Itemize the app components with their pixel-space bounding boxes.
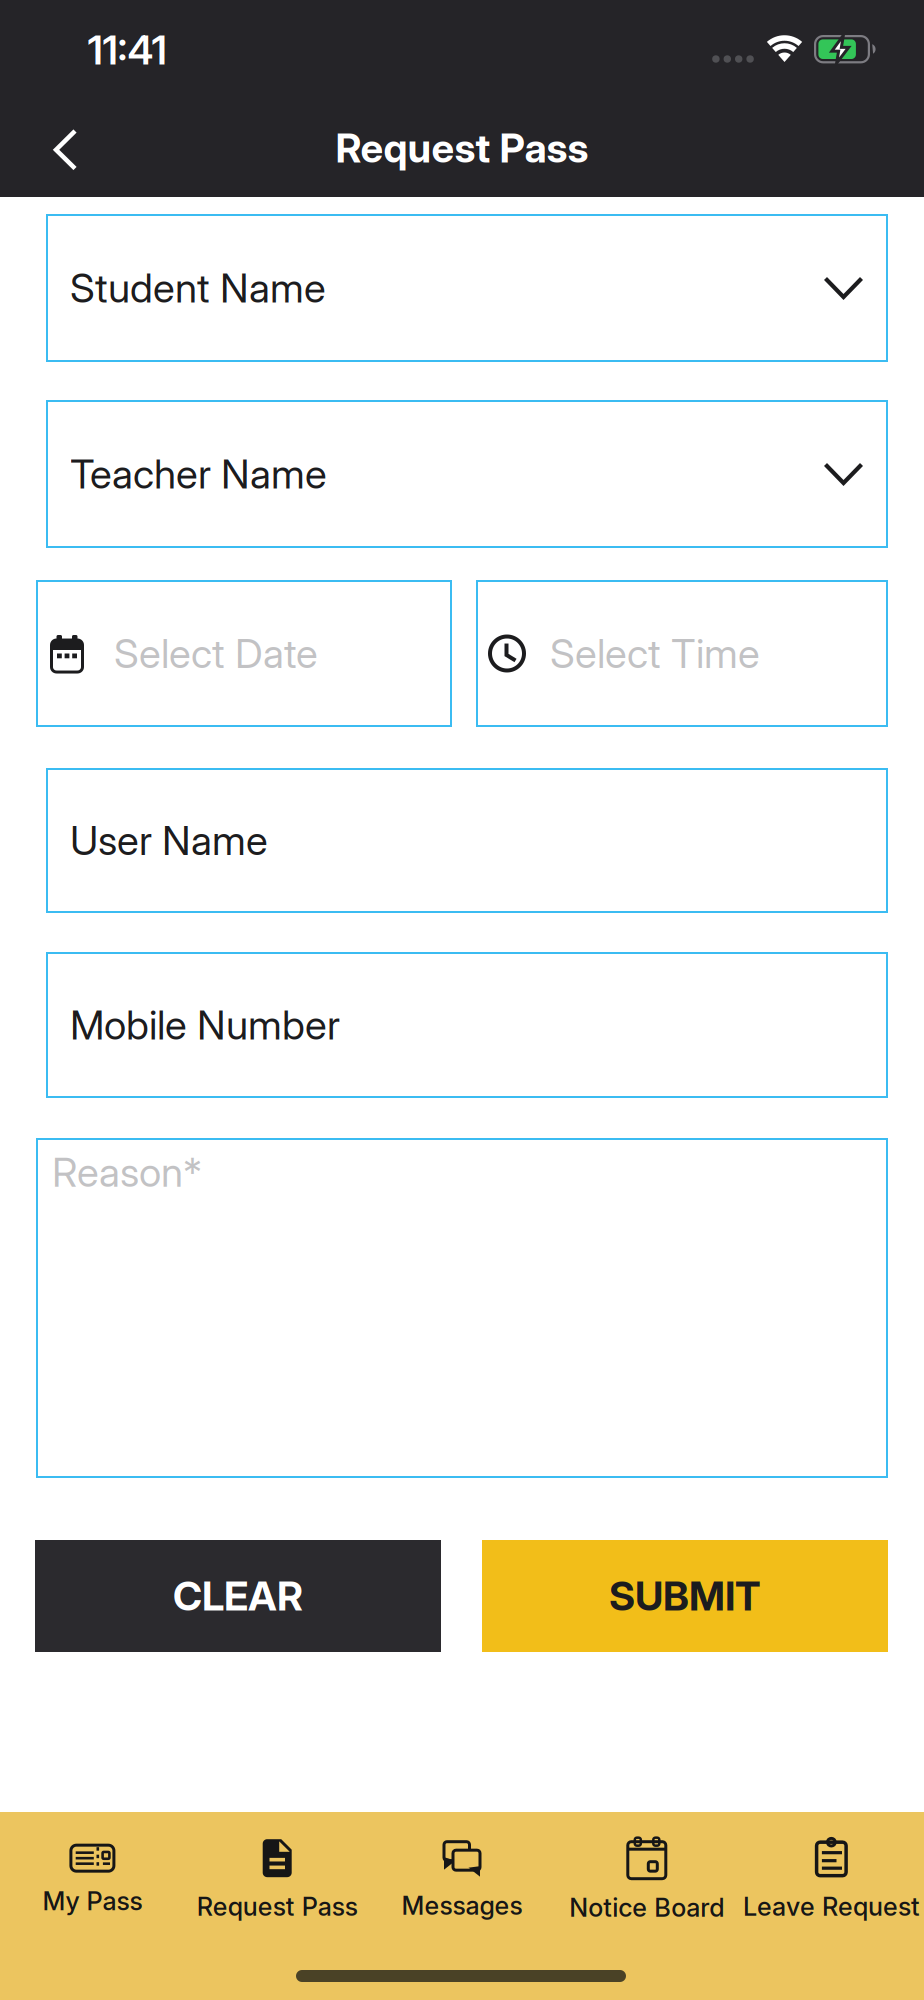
button[interactable]: Notice Board bbox=[542, 1836, 752, 1924]
staticText: Select Date bbox=[114, 629, 318, 678]
staticText: Teacher Name bbox=[70, 450, 327, 498]
staticText: Messages bbox=[401, 1890, 522, 1921]
button[interactable]: My Pass bbox=[0, 1836, 197, 1924]
button[interactable]: CLEAR bbox=[35, 1540, 441, 1652]
staticText: Mobile Number bbox=[70, 1001, 340, 1049]
staticText: My Pass bbox=[42, 1886, 142, 1916]
button[interactable]: Messages bbox=[357, 1836, 567, 1924]
staticText: Request Pass bbox=[197, 1891, 358, 1922]
button[interactable]: Reason* bbox=[36, 1138, 888, 1478]
button[interactable]: Request Pass bbox=[172, 1836, 382, 1924]
staticText: Select Time bbox=[550, 629, 760, 678]
button[interactable]: Select Time bbox=[476, 580, 888, 727]
staticText: Reason* bbox=[52, 1148, 202, 1196]
staticText: Request Pass bbox=[335, 124, 588, 172]
staticText: 11:41 bbox=[87, 26, 166, 74]
staticText: Student Name bbox=[70, 264, 326, 312]
staticText: SUBMIT bbox=[609, 1572, 761, 1620]
button[interactable]: Teacher Name bbox=[46, 400, 888, 548]
button[interactable]: SUBMIT bbox=[482, 1540, 888, 1652]
button[interactable]: Leave Request bbox=[727, 1836, 924, 1924]
staticText: CLEAR bbox=[173, 1572, 303, 1620]
button[interactable]: User Name bbox=[46, 768, 888, 913]
button[interactable]: Mobile Number bbox=[46, 952, 888, 1098]
staticText: Notice Board bbox=[569, 1892, 724, 1923]
button[interactable]: Student Name bbox=[46, 214, 888, 362]
staticText: Leave Request bbox=[743, 1891, 920, 1922]
staticText: User Name bbox=[70, 816, 268, 865]
button[interactable]: Back bbox=[51, 127, 81, 173]
button[interactable]: Select Date bbox=[36, 580, 452, 727]
